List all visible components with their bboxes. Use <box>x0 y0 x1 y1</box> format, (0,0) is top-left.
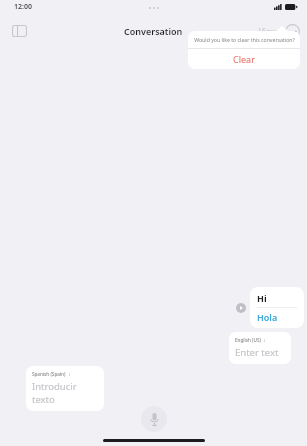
button[interactable]: View <box>257 23 279 40</box>
staticText: Conversation <box>124 25 183 37</box>
staticText: Would you like to clear this conversatio… <box>194 36 295 43</box>
staticText: Introducir texto <box>32 380 98 406</box>
staticText: View <box>259 26 277 37</box>
button[interactable]: Clear <box>188 49 300 69</box>
staticText: Spanish (Spain) <box>32 371 66 377</box>
button[interactable]: English (US) <box>229 332 291 364</box>
button[interactable]: Record voice <box>141 406 167 432</box>
staticText: Enter text <box>235 346 279 359</box>
button[interactable]: Spanish (Spain) <box>26 366 104 411</box>
button[interactable]: More options <box>285 24 300 39</box>
button[interactable]: Play <box>236 303 246 313</box>
staticText: Clear <box>233 53 255 65</box>
staticText: Hola <box>257 311 278 323</box>
staticText: English (US) <box>235 337 261 343</box>
button[interactable]: Toggle sidebar <box>8 20 30 42</box>
staticText: 12:00 <box>14 2 32 12</box>
button[interactable]: Hi <box>250 287 304 328</box>
staticText: Hi <box>257 292 267 304</box>
